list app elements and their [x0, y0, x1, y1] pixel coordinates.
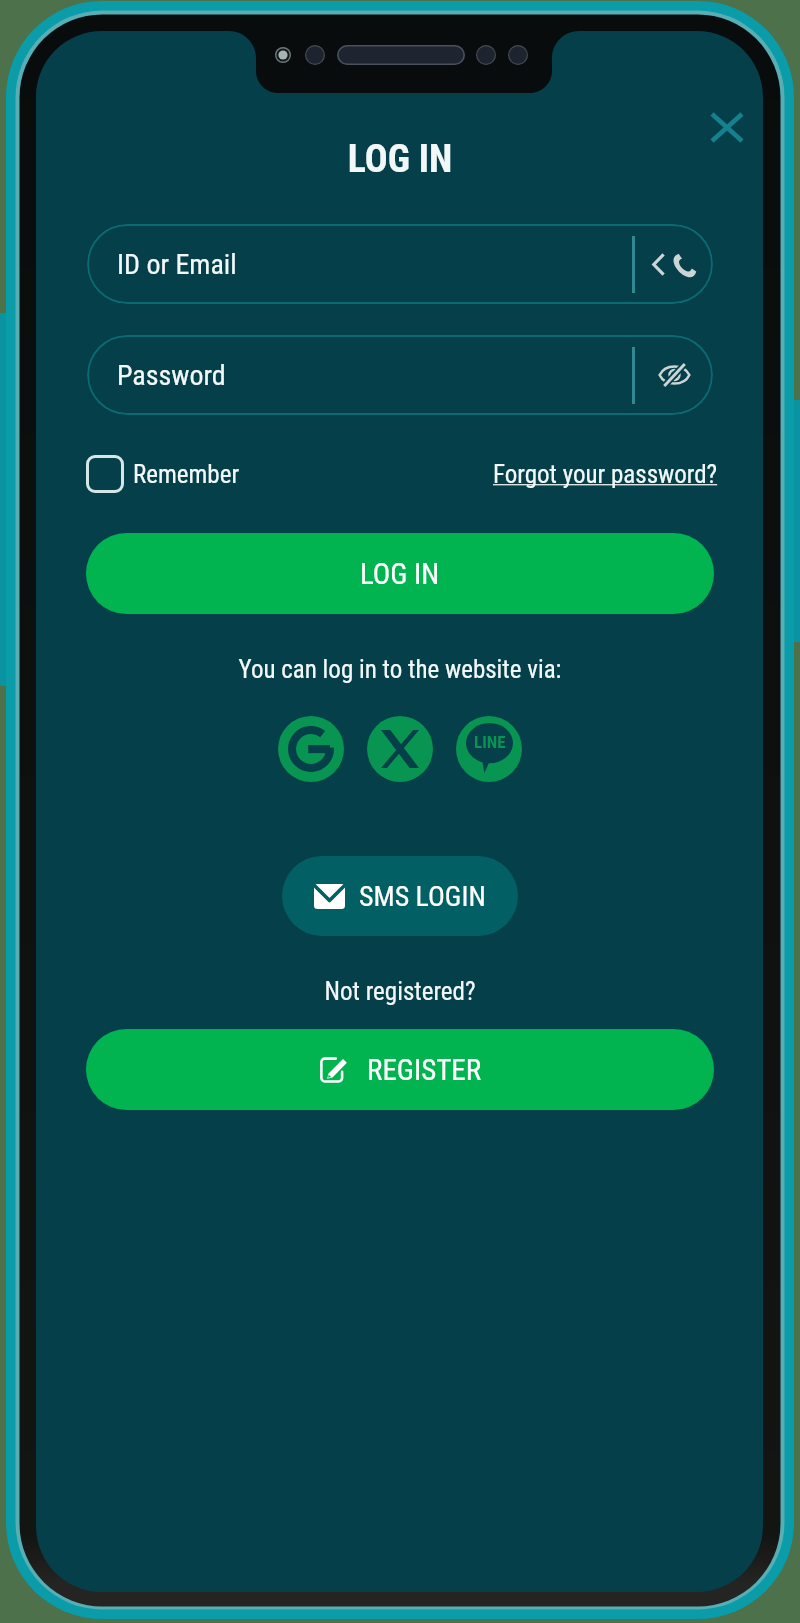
staticText: Forgot your password?	[493, 460, 718, 489]
staticText: Not registered?	[0, 977, 800, 1006]
button[interactable]: Password	[87, 335, 713, 415]
button[interactable]: Close	[699, 99, 755, 155]
button[interactable]: ID or Email	[87, 224, 713, 304]
button[interactable]: Forgot your password?	[493, 460, 718, 489]
staticText: LOG IN	[0, 137, 800, 182]
button[interactable]: SMS LOGIN	[282, 856, 518, 936]
staticText: LINE	[474, 732, 506, 752]
button[interactable]: REGISTER	[86, 1029, 714, 1110]
button[interactable]: Log in with Google	[278, 716, 344, 782]
staticText: ID or Email	[117, 248, 632, 281]
staticText: You can log in to the website via:	[0, 655, 800, 684]
staticText: LOG IN	[360, 557, 440, 591]
staticText: Remember	[133, 460, 240, 489]
staticText: REGISTER	[367, 1053, 482, 1087]
button[interactable]: LOG IN	[86, 533, 714, 614]
staticText: Password	[117, 359, 632, 392]
button[interactable]: Log in with LINE	[456, 716, 522, 782]
staticText: SMS LOGIN	[359, 880, 486, 913]
button[interactable]: Remember	[86, 455, 240, 493]
button[interactable]: Log in with X	[367, 716, 433, 782]
